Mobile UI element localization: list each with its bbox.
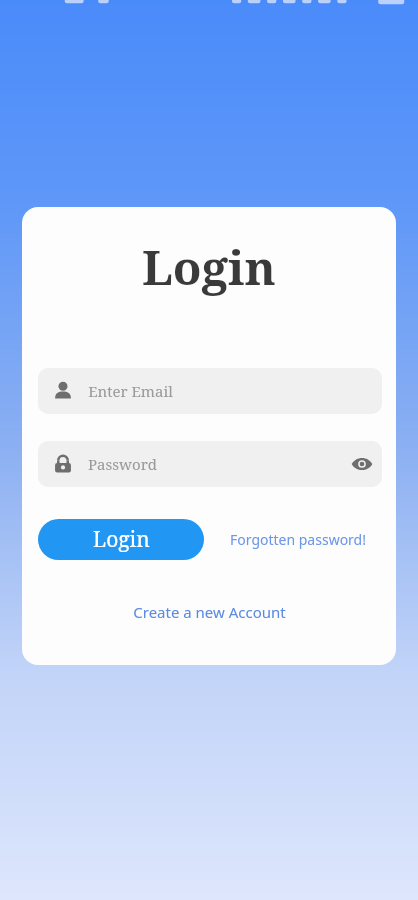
- staticText: Create a new Account: [133, 602, 286, 622]
- button[interactable]: Login: [38, 519, 204, 560]
- staticText: Login: [93, 525, 150, 554]
- staticText: Forgotten password!: [230, 530, 366, 549]
- button[interactable]: Forgotten password!: [214, 519, 382, 560]
- staticText: Password: [88, 454, 157, 474]
- button[interactable]: Enter Email: [38, 368, 382, 414]
- button[interactable]: Show password: [342, 444, 382, 484]
- button[interactable]: Password: [38, 441, 382, 487]
- staticText: Login: [142, 235, 276, 299]
- button[interactable]: Create a new Account: [22, 595, 396, 629]
- staticText: Enter Email: [88, 381, 173, 401]
